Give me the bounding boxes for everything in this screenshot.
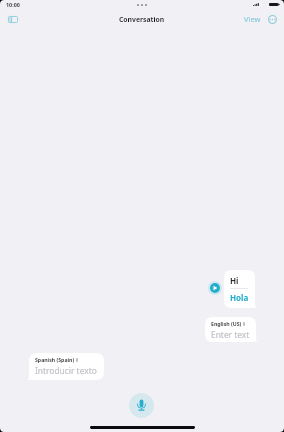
button[interactable]: Toggle sidebar	[8, 16, 18, 23]
button[interactable]: More options	[268, 15, 277, 24]
staticText: Spanish (Spain)	[35, 356, 75, 363]
staticText: Hi	[230, 275, 239, 286]
button[interactable]: View	[244, 14, 261, 24]
staticText: English (US)	[211, 320, 242, 327]
staticText: View	[244, 14, 261, 24]
staticText: Enter text	[211, 329, 250, 340]
button[interactable]: Play translation	[208, 281, 222, 295]
staticText: Introducir texto	[35, 365, 97, 376]
staticText: Conversation	[119, 15, 165, 24]
staticText: 10:00	[6, 1, 20, 8]
button[interactable]: Microphone	[129, 393, 154, 418]
staticText: Hola	[230, 292, 249, 303]
